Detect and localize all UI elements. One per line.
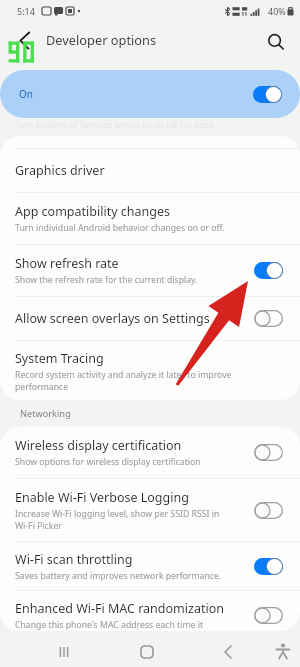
staticText: Turn loading of Settings layout on or of… (15, 119, 214, 131)
button[interactable]: Graphics driver (0, 149, 300, 192)
staticText: Enable Wi-Fi Verbose Logging (15, 489, 189, 506)
staticText: Change this phone's MAC address each tim… (15, 619, 204, 631)
button[interactable]: Home (129, 637, 165, 667)
staticText: Networking (20, 407, 71, 420)
button[interactable]: Show refresh rate (0, 245, 300, 296)
staticText: On (19, 87, 33, 101)
button[interactable]: Allow screen overlays on Settings (0, 297, 300, 340)
button[interactable]: On (0, 70, 300, 118)
staticText: Record system activity and analyze it la… (15, 369, 232, 392)
staticText: Turn individual Android behavior changes… (15, 222, 225, 234)
button[interactable]: Enhanced Wi-Fi MAC randomization (0, 591, 300, 631)
staticText: Show the refresh rate for the current di… (15, 274, 198, 286)
button[interactable]: Wireless display certification (0, 427, 300, 478)
button[interactable]: App compatibility changes (0, 193, 300, 244)
staticText: 5:14 (17, 5, 35, 17)
staticText: Show refresh rate (15, 255, 119, 272)
button[interactable]: Accessibility (265, 637, 300, 667)
staticText: System Tracing (15, 350, 104, 367)
staticText: Developer options (46, 31, 157, 48)
staticText: Enhanced Wi-Fi MAC randomization (15, 600, 224, 617)
button[interactable]: Enable Wi-Fi Verbose Logging (0, 479, 300, 541)
button[interactable]: System Tracing (0, 341, 300, 400)
button[interactable]: Wi-Fi scan throttling (0, 542, 300, 590)
staticText: Increase Wi-Fi logging level, show per S… (15, 508, 220, 531)
staticText: Wireless display certification (15, 437, 182, 454)
button[interactable]: Recent apps (46, 637, 82, 667)
button[interactable]: Navigate up (4, 24, 34, 54)
button[interactable]: Search (265, 27, 289, 51)
staticText: 40% (268, 5, 286, 17)
staticText: Wi-Fi scan throttling (15, 551, 133, 568)
staticText: Allow screen overlays on Settings (15, 310, 210, 327)
staticText: App compatibility changes (15, 203, 170, 220)
staticText: Saves battery and improves network perfo… (15, 570, 222, 582)
button[interactable]: Back (210, 637, 246, 667)
staticText: Graphics driver (15, 162, 105, 179)
staticText: Show options for wireless display certif… (15, 456, 201, 468)
